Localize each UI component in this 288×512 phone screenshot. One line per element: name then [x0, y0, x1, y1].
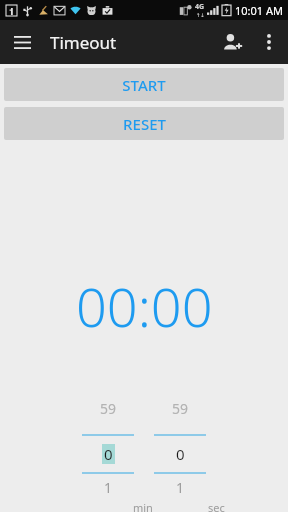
button[interactable]: More options: [252, 25, 286, 59]
staticText: sec: [208, 500, 225, 512]
staticText: Timeout: [50, 31, 117, 54]
staticText: 59: [172, 399, 189, 418]
button[interactable]: RESET: [4, 107, 284, 140]
staticText: 00:00: [76, 269, 213, 343]
staticText: ↑↓: [196, 12, 205, 18]
staticText: 0: [104, 444, 113, 464]
staticText: 10:01 AM: [235, 3, 283, 18]
staticText: RESET: [123, 114, 166, 134]
staticText: START: [122, 75, 166, 95]
staticText: 4G: [195, 2, 205, 12]
staticText: 1: [104, 478, 113, 497]
staticText: 1: [176, 478, 185, 497]
staticText: min: [133, 500, 153, 512]
button[interactable]: 59: [82, 394, 134, 512]
button[interactable]: START: [4, 68, 284, 101]
button[interactable]: Open navigation menu: [6, 26, 38, 58]
staticText: 0: [176, 444, 185, 464]
button[interactable]: Add person: [212, 22, 252, 62]
button[interactable]: 59: [154, 394, 206, 512]
staticText: 59: [100, 399, 117, 418]
